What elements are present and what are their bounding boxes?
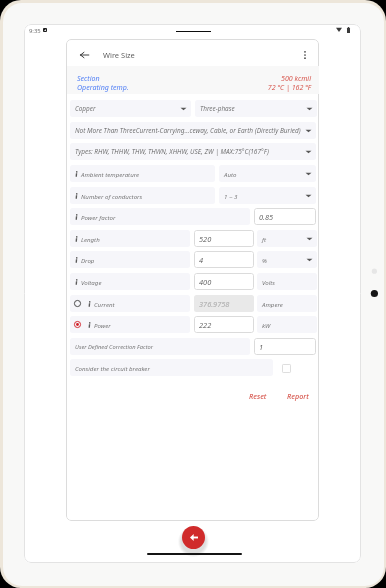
staticText: 1 [259, 342, 264, 352]
button[interactable]: Navigate back [77, 48, 91, 62]
staticText: Ampere [262, 300, 283, 308]
staticText: Copper [75, 104, 180, 113]
staticText: Ambient temperature [81, 170, 140, 178]
button[interactable]: Number of conductors [70, 187, 215, 204]
staticText: kW [262, 321, 271, 329]
staticText: 4 [199, 255, 204, 265]
button[interactable]: Ambient temperature [70, 165, 215, 182]
staticText: Wire Size [103, 50, 135, 60]
button[interactable]: 520 [194, 230, 254, 247]
staticText: Auto [224, 170, 305, 178]
staticText: Power [94, 321, 111, 329]
staticText: % [262, 256, 306, 264]
button[interactable]: kW [257, 316, 317, 333]
staticText: Operating temp. [77, 82, 129, 92]
button[interactable]: Consider the circuit breaker [282, 364, 291, 373]
button[interactable]: 222 [194, 316, 254, 333]
staticText: 500 kcmil [200, 73, 311, 83]
button[interactable]: Not More Than ThreeCurrent-Carrying...ce… [70, 122, 316, 139]
button[interactable]: Consider the circuit breaker [70, 359, 273, 376]
staticText: 0.85 [259, 212, 274, 222]
button[interactable]: Report [282, 389, 313, 402]
staticText: 520 [199, 234, 212, 244]
staticText: Types: RHW, THHW, THW, THWN, XHHW, USE, … [75, 147, 305, 156]
button[interactable]: Three-phase [195, 100, 317, 117]
staticText: Volts [262, 278, 313, 286]
button[interactable]: ft [257, 230, 317, 247]
button[interactable]: User Defined Correction Factor [70, 338, 250, 355]
button[interactable]: 0.85 [254, 208, 316, 225]
staticText: Voltage [81, 278, 102, 286]
staticText: User Defined Correction Factor [75, 343, 154, 351]
staticText: 376.9758 [199, 299, 230, 309]
staticText: Three-phase [200, 104, 306, 113]
button[interactable]: 400 [194, 273, 254, 290]
button[interactable]: Current [70, 295, 190, 312]
staticText: Length [81, 235, 100, 243]
button[interactable]: 376.9758 [194, 295, 254, 312]
button[interactable]: More options [298, 48, 312, 62]
button[interactable]: Power [70, 316, 190, 333]
staticText: Current [94, 300, 115, 308]
staticText: 400 [199, 277, 212, 287]
button[interactable]: Power factor [70, 208, 250, 225]
button[interactable]: Wire Size [103, 50, 135, 60]
button[interactable]: 4 [194, 251, 254, 268]
button[interactable]: Length [70, 230, 190, 247]
button[interactable]: Back [182, 526, 205, 549]
staticText: Power factor [81, 213, 116, 221]
button[interactable]: Drop [70, 251, 190, 268]
staticText: 72 ℃ | 162 ℉ [200, 82, 311, 92]
staticText: ft [262, 235, 306, 243]
button[interactable]: Auto [219, 165, 316, 182]
staticText: 9:35 [29, 27, 41, 35]
staticText: Not More Than ThreeCurrent-Carrying...ce… [75, 126, 305, 135]
button[interactable]: Ampere [257, 295, 317, 312]
staticText: Report [287, 391, 309, 401]
staticText: Reset [249, 391, 267, 401]
button[interactable]: 1 [254, 338, 316, 355]
button[interactable]: Voltage [70, 273, 190, 290]
button[interactable]: Copper [70, 100, 191, 117]
button[interactable]: Types: RHW, THHW, THW, THWN, XHHW, USE, … [70, 143, 316, 160]
button[interactable]: 1 ~ 3 [219, 187, 316, 204]
staticText: 222 [199, 320, 212, 330]
button[interactable]: % [257, 251, 317, 268]
staticText: Number of conductors [81, 192, 143, 200]
staticText: Drop [81, 256, 95, 264]
staticText: Section [77, 73, 100, 83]
staticText: Consider the circuit breaker [75, 364, 150, 372]
button[interactable]: Reset [244, 389, 272, 402]
staticText: 1 ~ 3 [224, 192, 305, 200]
button[interactable]: Volts [257, 273, 317, 290]
